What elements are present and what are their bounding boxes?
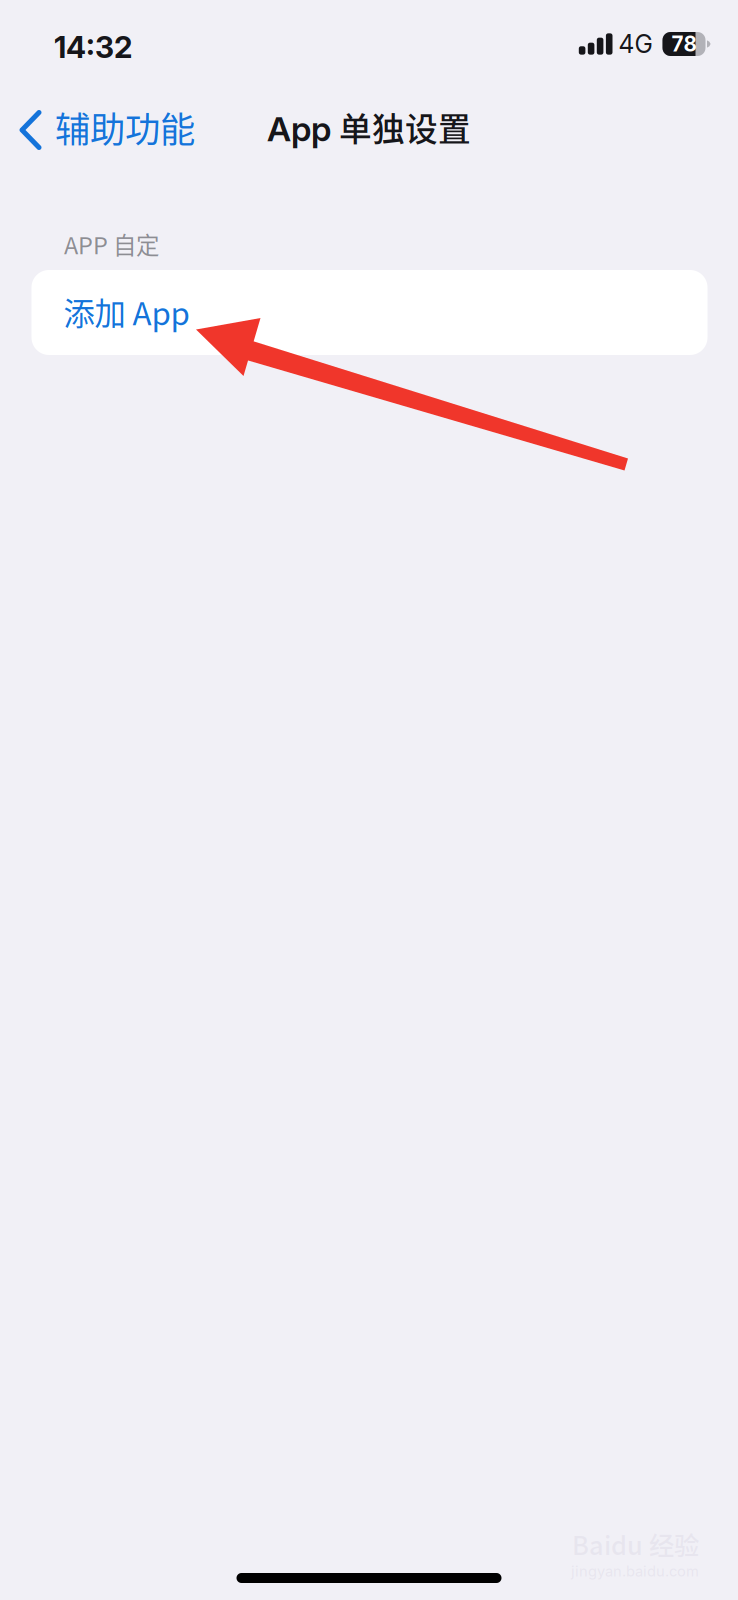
staticText: App 单独设置 <box>267 104 471 150</box>
staticText: 添加 App <box>63 289 189 334</box>
staticText: 4G <box>618 29 652 59</box>
button[interactable]: 辅助功能 <box>0 93 209 169</box>
staticText: 辅助功能 <box>55 101 195 153</box>
staticText: jingyan.baidu.com <box>571 1562 699 1580</box>
button[interactable]: 添加 App <box>31 270 707 355</box>
staticText: Baidu 经验 <box>572 1526 699 1562</box>
staticText: 78 <box>671 31 696 56</box>
staticText: APP 自定 <box>64 227 159 261</box>
staticText: 14:32 <box>54 29 132 65</box>
